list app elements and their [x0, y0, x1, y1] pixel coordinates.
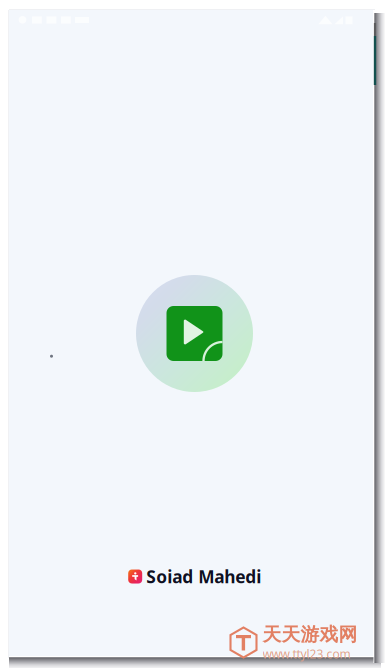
staticText: 天天游戏网 — [262, 623, 357, 646]
staticText: Soiad Mahedi — [146, 565, 261, 588]
button[interactable]: Soiad Mahedi — [128, 565, 261, 588]
staticText: www.ttyl23.com — [262, 646, 350, 662]
